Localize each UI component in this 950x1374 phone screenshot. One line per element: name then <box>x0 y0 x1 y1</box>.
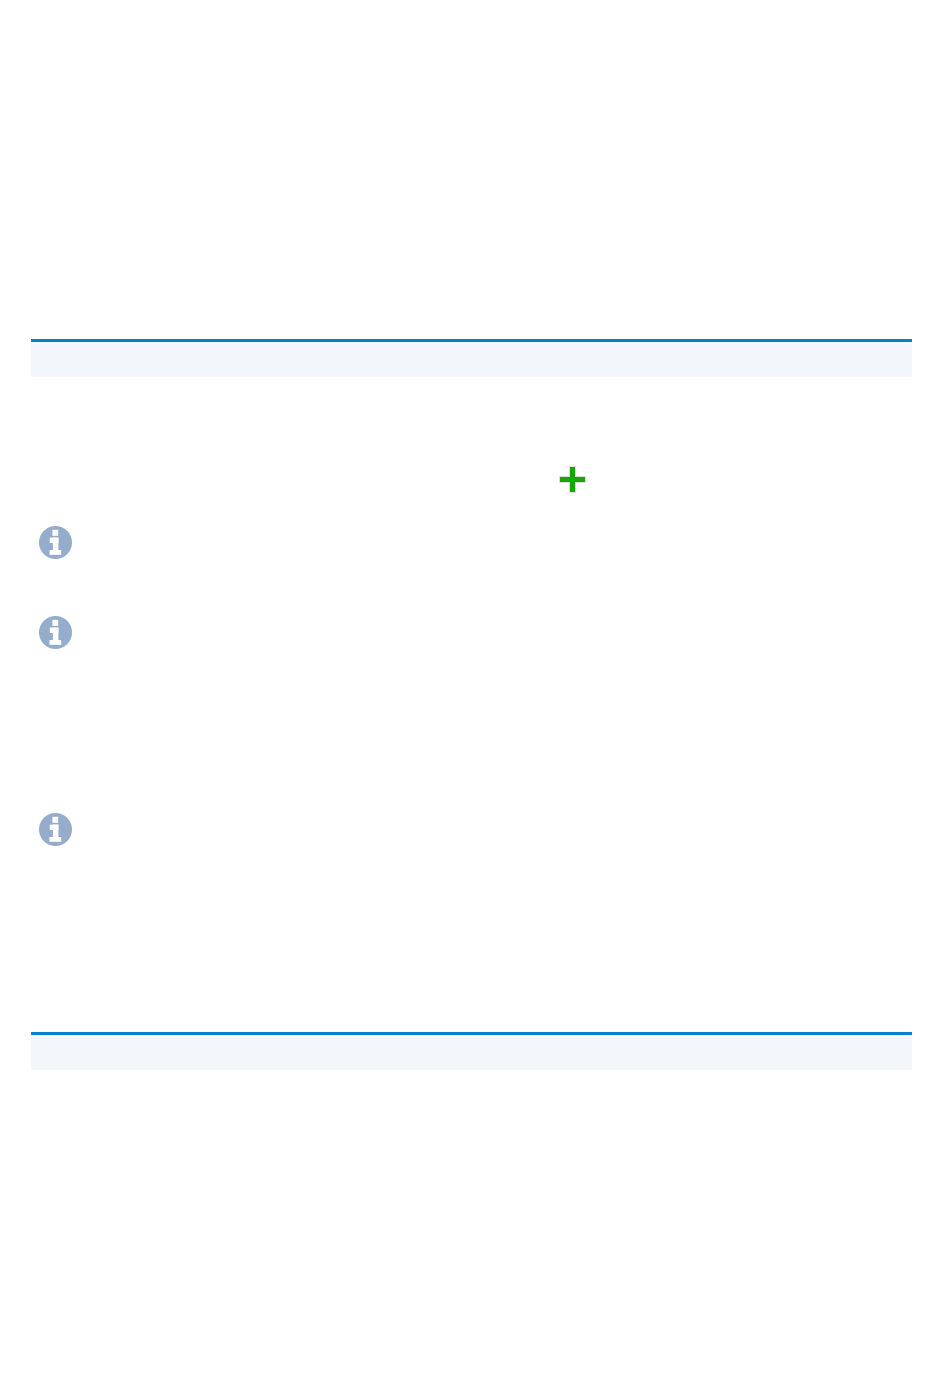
button[interactable]: More information <box>39 526 72 559</box>
button[interactable]: Add <box>559 466 586 493</box>
button[interactable]: More information <box>39 813 72 846</box>
button[interactable]: More information <box>39 616 72 649</box>
